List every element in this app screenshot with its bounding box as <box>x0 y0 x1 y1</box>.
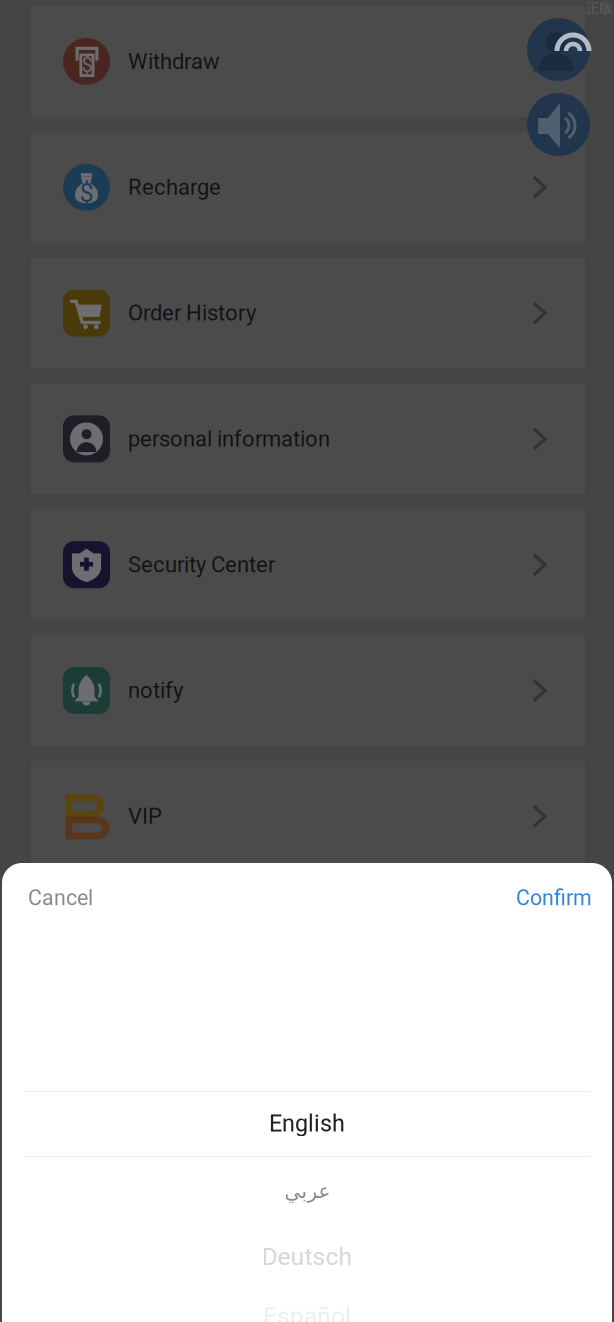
staticText: Confirm <box>516 885 592 910</box>
staticText: personal information <box>128 426 330 452</box>
button[interactable]: VIP <box>31 761 585 872</box>
staticText: Deutsch <box>261 1242 352 1271</box>
staticText: Order History <box>128 300 256 326</box>
button[interactable]: Sound <box>527 93 590 156</box>
button[interactable]: Customer support <box>527 18 590 81</box>
staticText: VIP <box>128 803 162 829</box>
button[interactable]: $ <box>31 132 585 243</box>
button[interactable]: Order History <box>31 258 585 369</box>
staticText: عربي <box>284 1179 330 1203</box>
staticText: English <box>269 1110 345 1137</box>
staticText: Cancel <box>28 885 93 910</box>
button[interactable]: Confirm <box>516 863 612 933</box>
button[interactable]: $ <box>31 6 585 117</box>
button[interactable]: personal information <box>31 383 585 494</box>
button[interactable]: Security Center <box>31 509 585 620</box>
staticText: $ <box>81 53 92 77</box>
staticText: $ <box>79 179 93 208</box>
staticText: Security Center <box>128 552 275 578</box>
button[interactable]: notify <box>31 635 585 746</box>
staticText: notify <box>128 678 183 703</box>
staticText: 正版 <box>586 0 612 17</box>
staticText: Recharge <box>128 174 221 200</box>
button[interactable]: Cancel <box>2 863 93 933</box>
staticText: Withdraw <box>128 49 220 74</box>
staticText: Español <box>263 1301 351 1322</box>
